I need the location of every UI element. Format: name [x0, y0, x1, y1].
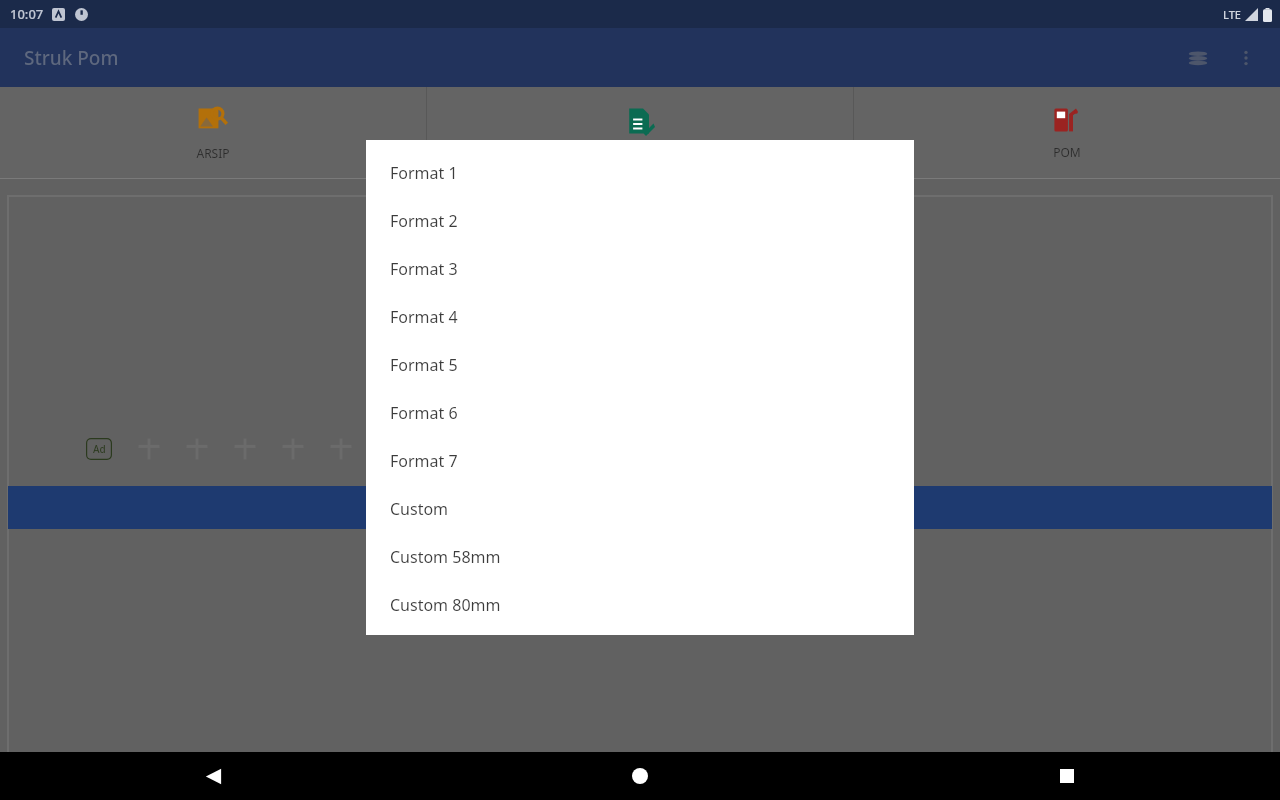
button[interactable]: Custom	[366, 485, 914, 533]
staticText: Format 6	[390, 402, 458, 424]
staticText: Format 1	[390, 162, 458, 184]
staticText: Format 7	[390, 450, 458, 472]
button[interactable]: Format 1	[366, 149, 914, 197]
button[interactable]: ARSIP	[0, 87, 426, 178]
button[interactable]: Format 6	[366, 389, 914, 437]
button[interactable]: Database	[1174, 34, 1222, 82]
button[interactable]: Custom 58mm	[366, 533, 914, 581]
button[interactable]: Back	[0, 752, 426, 800]
staticText: Custom 80mm	[390, 594, 501, 616]
staticText: 10:07	[10, 5, 44, 23]
button[interactable]: Format 3	[366, 245, 914, 293]
staticText: Custom	[390, 498, 449, 520]
staticText: LTE	[1223, 7, 1241, 22]
staticText: Ad	[93, 442, 106, 456]
button[interactable]: More options	[1222, 34, 1270, 82]
button[interactable]: Format 4	[366, 293, 914, 341]
button[interactable]: Custom 80mm	[366, 581, 914, 629]
staticText: Custom 58mm	[390, 546, 501, 568]
button[interactable]: Create receipt	[427, 87, 853, 178]
staticText: Struk Pom	[24, 45, 119, 71]
staticText: Format 3	[390, 258, 458, 280]
staticText: Format 2	[390, 210, 458, 232]
button[interactable]: Format 5	[366, 341, 914, 389]
button[interactable]: Home	[426, 752, 853, 800]
button[interactable]: Format 2	[366, 197, 914, 245]
staticText: POM	[1053, 144, 1081, 160]
button[interactable]: Format 7	[366, 437, 914, 485]
button[interactable]: POM	[854, 87, 1280, 178]
staticText: ARSIP	[196, 145, 230, 161]
staticText: Format 5	[390, 354, 458, 376]
staticText: Format 4	[390, 306, 458, 328]
button[interactable]: Recent apps	[853, 752, 1280, 800]
button[interactable]	[8, 486, 1272, 529]
